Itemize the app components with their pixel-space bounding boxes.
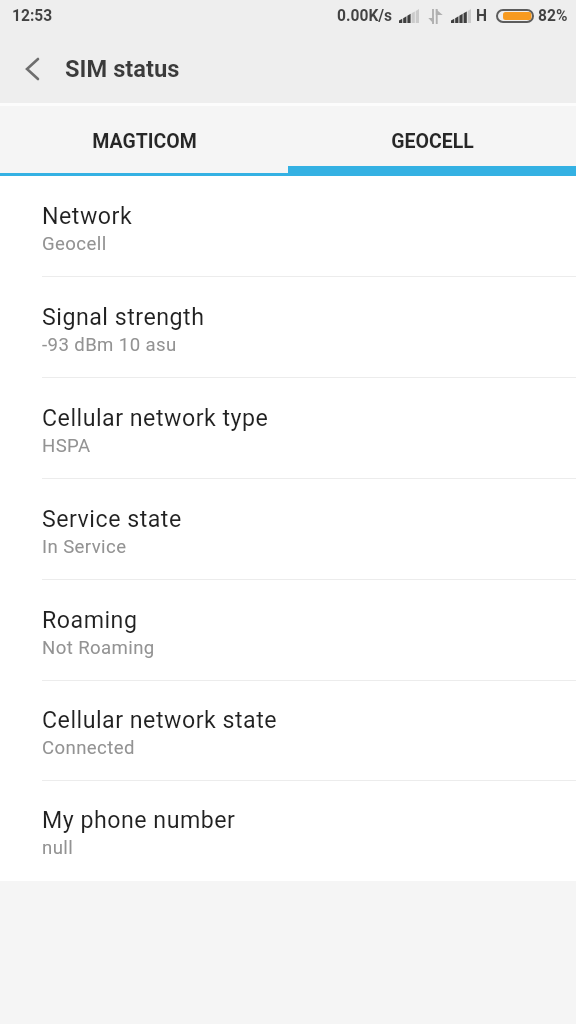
staticText: null [42, 837, 74, 859]
staticText: Cellular network state [42, 706, 278, 733]
staticText: In Service [42, 536, 127, 558]
staticText: 0.00K/s [337, 7, 393, 25]
staticText: Signal strength [42, 303, 205, 330]
button[interactable]: GEOCELL [288, 103, 576, 176]
staticText: MAGTICOM [92, 130, 197, 153]
button[interactable]: My phone number [0, 781, 576, 881]
staticText: H [476, 7, 488, 25]
staticText: SIM status [65, 55, 180, 83]
button[interactable]: MAGTICOM [0, 103, 288, 176]
button[interactable]: Service state [0, 479, 576, 580]
button[interactable]: Back [0, 35, 65, 103]
staticText: Not Roaming [42, 637, 155, 659]
staticText: HSPA [42, 435, 91, 457]
staticText: Cellular network type [42, 404, 269, 431]
button[interactable]: Roaming [0, 580, 576, 681]
staticText: My phone number [42, 806, 236, 833]
button[interactable]: Signal strength [0, 277, 576, 378]
staticText: Geocell [42, 233, 107, 255]
staticText: 82% [538, 7, 568, 25]
staticText: GEOCELL [391, 130, 474, 153]
staticText: Service state [42, 505, 182, 532]
staticText: Roaming [42, 606, 138, 633]
staticText: 12:53 [12, 7, 53, 25]
staticText: -93 dBm 10 asu [42, 334, 177, 356]
staticText: Network [42, 202, 133, 229]
staticText: Connected [42, 737, 135, 759]
button[interactable]: Cellular network type [0, 378, 576, 479]
button[interactable]: Cellular network state [0, 681, 576, 781]
button[interactable]: Network [0, 176, 576, 277]
